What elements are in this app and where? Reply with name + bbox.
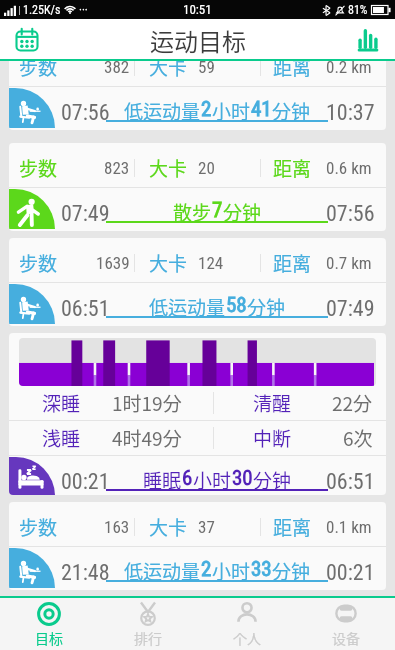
button[interactable]: 深睡 bbox=[9, 333, 386, 495]
staticText: 个人 bbox=[233, 628, 261, 648]
staticText: 低运动量 bbox=[124, 97, 201, 125]
staticText: 4时49分 bbox=[112, 424, 182, 452]
staticText: 睡眠 bbox=[143, 466, 182, 494]
staticText: 低运动量 bbox=[149, 293, 226, 321]
button[interactable]: 设备 bbox=[296, 598, 395, 650]
staticText: 低运动量 bbox=[124, 557, 201, 585]
staticText: 排行 bbox=[134, 628, 162, 648]
staticText: 07:49 bbox=[61, 201, 110, 227]
staticText: 大卡 bbox=[149, 513, 188, 541]
staticText: 分钟 bbox=[272, 557, 311, 585]
staticText: 1.25K/s bbox=[23, 3, 61, 17]
staticText: 分钟 bbox=[253, 466, 292, 494]
staticText: 步数 bbox=[19, 61, 58, 81]
other: Activity detail bbox=[9, 457, 55, 495]
staticText: 运动目标 bbox=[150, 23, 246, 58]
staticText: 124 bbox=[198, 253, 224, 273]
staticText: 小时 bbox=[212, 97, 251, 125]
staticText: 0.7 km bbox=[326, 253, 372, 273]
staticText: 2 bbox=[201, 557, 212, 582]
staticText: 10:37 bbox=[326, 100, 375, 126]
button[interactable]: 排行 bbox=[98, 598, 197, 650]
button[interactable]: 个人 bbox=[197, 598, 296, 650]
other: Activity detail bbox=[9, 189, 55, 229]
staticText: 浅睡 bbox=[42, 424, 81, 452]
staticText: 41 bbox=[251, 97, 272, 122]
other: Activity detail bbox=[9, 548, 55, 588]
staticText: 距离 bbox=[273, 154, 312, 182]
staticText: 6次 bbox=[343, 424, 373, 452]
staticText: 10:51 bbox=[183, 2, 212, 17]
button[interactable]: 步数 bbox=[9, 143, 386, 231]
button[interactable]: Calendar bbox=[10, 23, 44, 57]
other: Activity detail bbox=[9, 284, 55, 324]
staticText: ··· bbox=[79, 3, 88, 17]
staticText: 07:56 bbox=[61, 100, 110, 126]
staticText: 382 bbox=[104, 61, 130, 77]
staticText: 20 bbox=[198, 158, 215, 178]
staticText: 823 bbox=[104, 158, 130, 178]
staticText: 07:49 bbox=[326, 296, 375, 322]
button[interactable]: 步数 bbox=[9, 502, 386, 590]
staticText: 设备 bbox=[332, 628, 360, 648]
staticText: 步数 bbox=[19, 513, 58, 541]
staticText: 6 bbox=[182, 466, 193, 491]
staticText: 分钟 bbox=[223, 198, 262, 226]
staticText: 58 bbox=[226, 293, 247, 318]
staticText: 大卡 bbox=[149, 61, 188, 81]
staticText: 0.1 km bbox=[326, 517, 372, 537]
staticText: 距离 bbox=[273, 249, 312, 277]
staticText: 1639 bbox=[96, 253, 130, 273]
staticText: 大卡 bbox=[149, 154, 188, 182]
staticText: 大卡 bbox=[149, 249, 188, 277]
staticText: 中断 bbox=[253, 424, 292, 452]
staticText: 2 bbox=[201, 97, 212, 122]
staticText: 分钟 bbox=[272, 97, 311, 125]
staticText: 06:51 bbox=[61, 296, 110, 322]
button[interactable]: 步数 bbox=[9, 61, 386, 130]
button[interactable]: Statistics bbox=[351, 23, 385, 57]
staticText: 81% bbox=[348, 3, 368, 17]
staticText: 0.2 km bbox=[326, 61, 372, 77]
staticText: 22分 bbox=[332, 389, 373, 417]
staticText: 0.6 km bbox=[326, 158, 372, 178]
staticText: 清醒 bbox=[253, 389, 292, 417]
staticText: 距离 bbox=[273, 513, 312, 541]
staticText: 7 bbox=[212, 198, 223, 223]
staticText: 37 bbox=[198, 517, 215, 537]
staticText: 目标 bbox=[35, 628, 63, 648]
staticText: 散步 bbox=[173, 198, 212, 226]
staticText: 步数 bbox=[19, 249, 58, 277]
staticText: 07:56 bbox=[326, 201, 375, 227]
staticText: 06:51 bbox=[326, 469, 375, 495]
staticText: 00:21 bbox=[326, 560, 375, 586]
staticText: 步数 bbox=[19, 154, 58, 182]
staticText: 00:21 bbox=[61, 469, 110, 495]
staticText: 30 bbox=[232, 466, 253, 491]
staticText: 小时 bbox=[193, 466, 232, 494]
button[interactable]: 目标 bbox=[0, 598, 98, 650]
other: Activity detail bbox=[9, 88, 55, 128]
staticText: 33 bbox=[251, 557, 272, 582]
staticText: 1时19分 bbox=[112, 389, 182, 417]
staticText: 小时 bbox=[212, 557, 251, 585]
staticText: 163 bbox=[104, 517, 130, 537]
staticText: 分钟 bbox=[247, 293, 286, 321]
button[interactable]: 步数 bbox=[9, 238, 386, 326]
staticText: 59 bbox=[198, 61, 215, 77]
staticText: 21:48 bbox=[61, 560, 110, 586]
staticText: 深睡 bbox=[42, 389, 81, 417]
staticText: 距离 bbox=[273, 61, 312, 81]
